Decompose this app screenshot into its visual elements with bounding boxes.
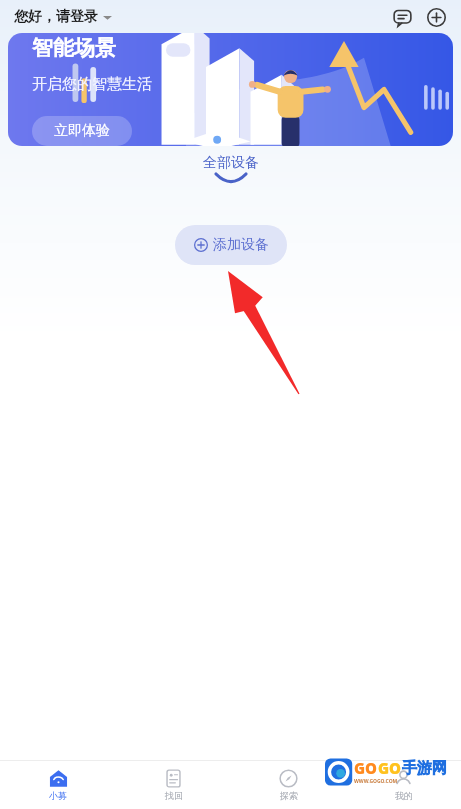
button[interactable]: Add — [421, 2, 451, 32]
button[interactable]: 小募 — [0, 761, 116, 809]
staticText: 开启您的智慧生活 — [32, 75, 152, 94]
staticText: GO — [354, 758, 378, 778]
staticText: 小募 — [49, 790, 67, 801]
staticText: 智能场景 — [32, 35, 116, 61]
button[interactable]: 添加设备 — [175, 225, 287, 265]
button[interactable]: 探索 — [231, 761, 346, 809]
button[interactable]: 立即体验 — [32, 116, 132, 146]
staticText: GO — [378, 758, 402, 778]
button[interactable]: 找回 — [116, 761, 231, 809]
staticText: 探索 — [280, 790, 298, 801]
staticText: 全部设备 — [203, 154, 259, 172]
button[interactable]: 我的 — [346, 761, 461, 809]
button[interactable]: 智能场景 — [8, 33, 453, 146]
staticText: 添加设备 — [213, 236, 269, 254]
button[interactable]: 您好，请登录 — [12, 4, 114, 30]
staticText: 立即体验 — [54, 122, 110, 140]
button[interactable]: 全部设备 — [193, 152, 269, 185]
staticText: 手游网 — [402, 759, 447, 778]
staticText: 我的 — [395, 790, 413, 801]
staticText: WWW.GOGO.COM — [354, 778, 398, 785]
button[interactable]: Messages — [387, 2, 417, 32]
staticText: 您好，请登录 — [14, 8, 98, 26]
staticText: 找回 — [165, 790, 183, 801]
